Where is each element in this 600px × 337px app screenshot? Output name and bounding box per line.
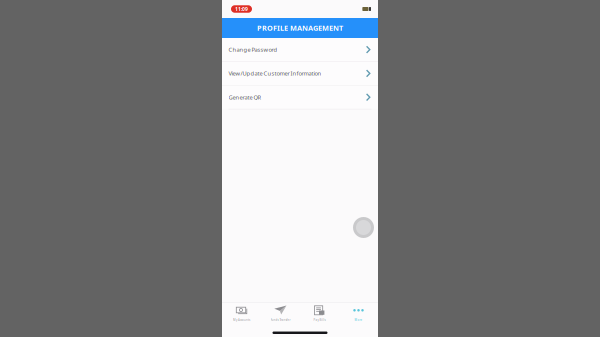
button[interactable]: Generate QR [222, 86, 378, 109]
button[interactable]: My Accounts [222, 303, 261, 325]
button[interactable]: More [339, 303, 378, 325]
button[interactable]: Assistive Touch [353, 217, 374, 238]
staticText: Change Password [228, 46, 277, 53]
staticText: Generate QR [228, 93, 261, 101]
button[interactable]: Change Password [222, 38, 378, 61]
staticText: View/Update Customer Information [228, 69, 321, 77]
button[interactable]: Funds Transfer [261, 303, 300, 325]
staticText: My Accounts [233, 318, 250, 322]
staticText: More [354, 318, 362, 322]
staticText: 11:09 [235, 5, 248, 12]
button[interactable]: Pay Bills [300, 303, 339, 325]
staticText: Funds Transfer [270, 318, 290, 322]
staticText: Pay Bills [313, 318, 325, 322]
button[interactable]: View/Update Customer Information [222, 62, 378, 85]
staticText: PROFILE MANAGEMENT [257, 23, 343, 33]
